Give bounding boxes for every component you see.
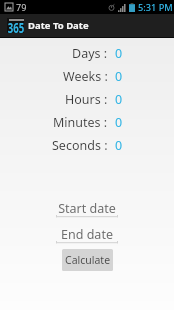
button[interactable]: End date (56, 226, 118, 244)
button[interactable]: Date To Date app icon (0, 14, 174, 37)
staticText: Weeks : (63, 68, 108, 85)
staticText: 0 (115, 45, 123, 62)
staticText: 0 (115, 114, 123, 131)
staticText: Calculate (65, 253, 111, 267)
staticText: 0 (115, 68, 123, 85)
staticText: Days : (72, 45, 108, 62)
staticText: 79 (16, 1, 27, 13)
staticText: Start date (56, 200, 118, 215)
staticText: 0 (115, 137, 123, 154)
button[interactable]: Start date (56, 200, 118, 218)
other: Date To Date app icon (7, 18, 24, 33)
staticText: 365 (8, 18, 24, 36)
staticText: Hours : (65, 91, 108, 108)
staticText: End date (56, 226, 118, 241)
staticText: Minutes : (53, 114, 108, 131)
staticText: Date To Date (28, 19, 89, 32)
staticText: 0 (115, 91, 123, 108)
button[interactable]: Calculate (62, 249, 113, 271)
staticText: Seconds : (52, 137, 108, 154)
staticText: 5:31 PM (138, 1, 173, 14)
